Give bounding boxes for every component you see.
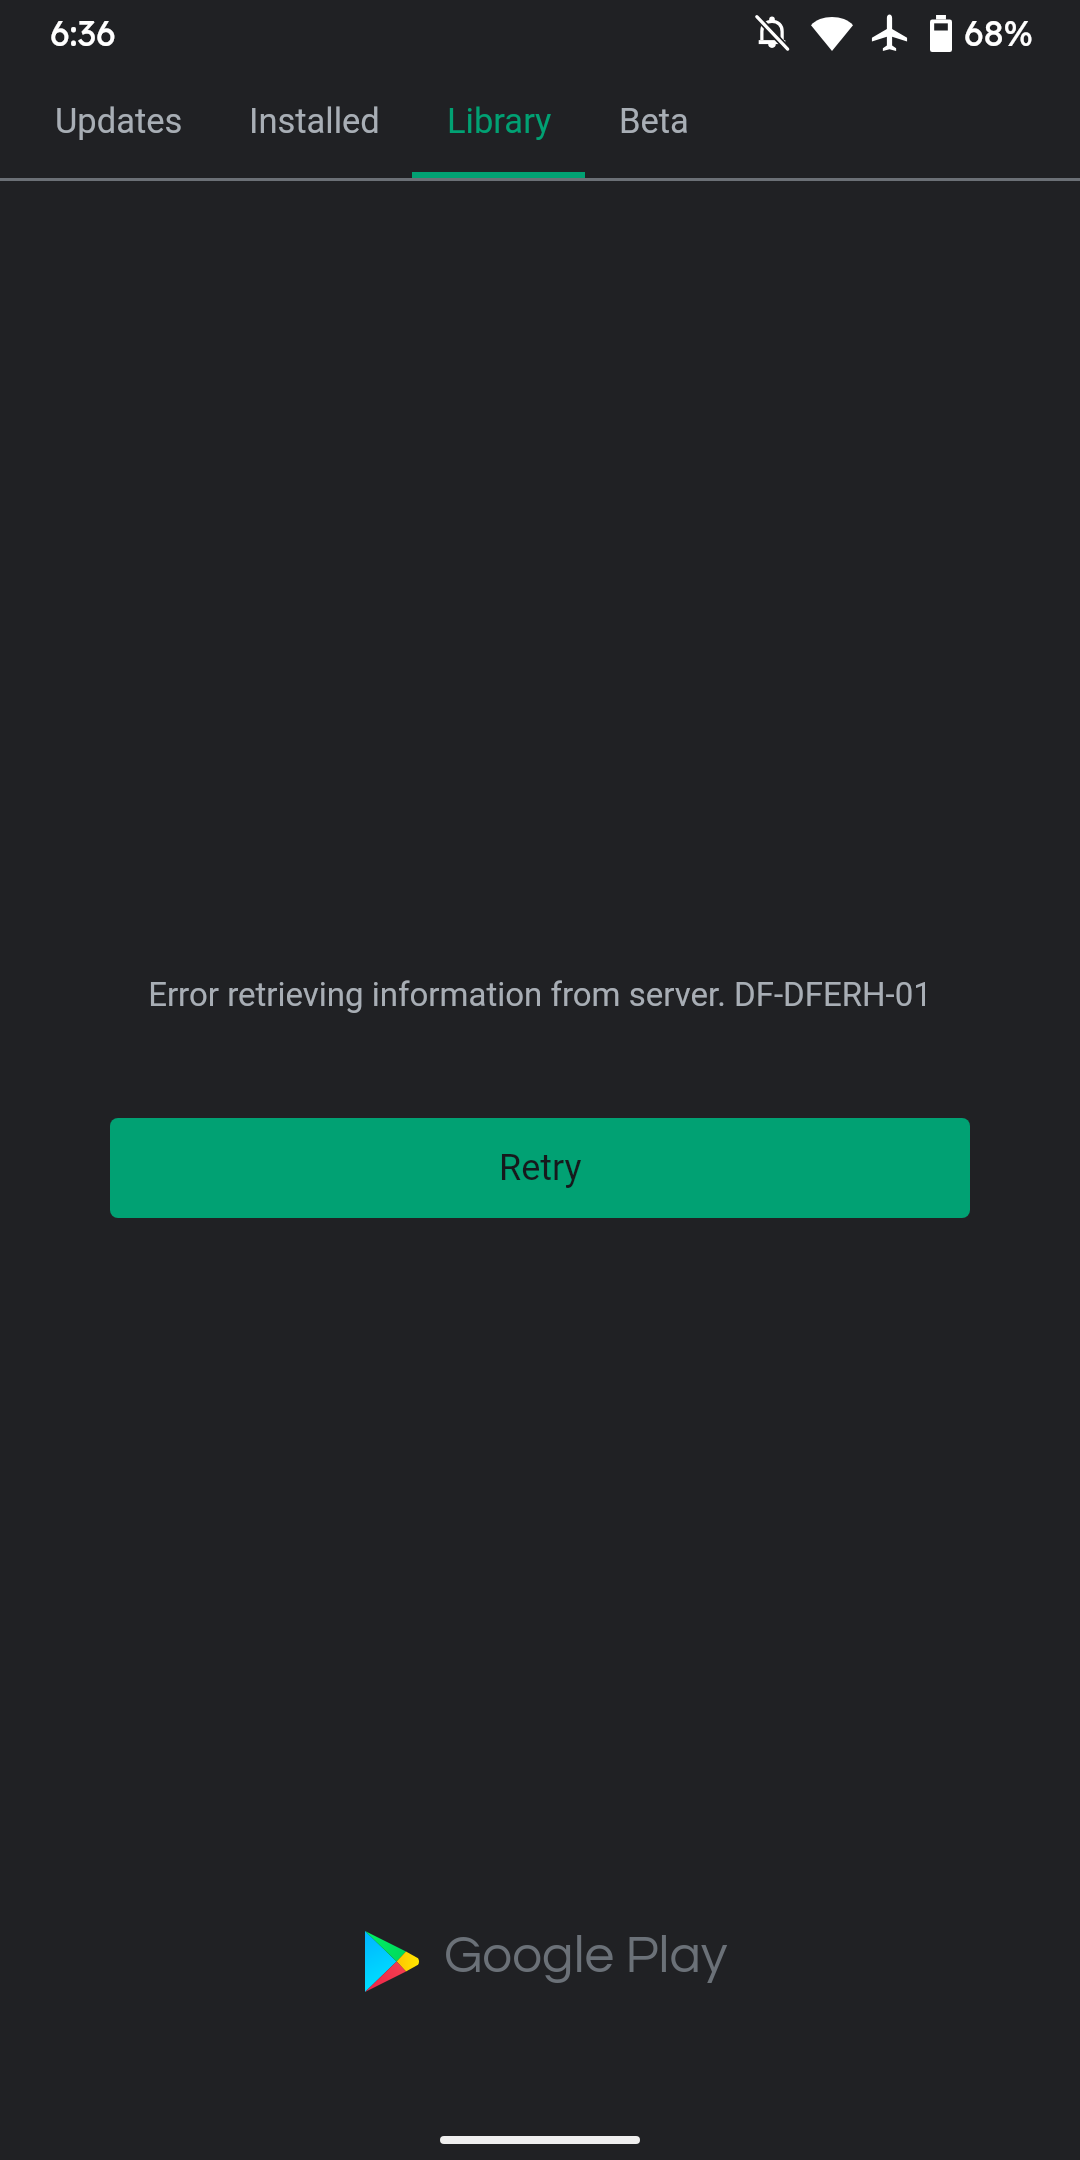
staticText: Installed xyxy=(249,101,380,141)
other: Notifications off xyxy=(753,14,791,52)
button[interactable]: Library xyxy=(425,66,574,178)
staticText: 6:36 xyxy=(50,11,116,55)
other: Airplane mode xyxy=(871,14,908,52)
staticText: Retry xyxy=(499,1147,582,1189)
staticText: 68% xyxy=(964,11,1034,55)
other: Wi-Fi xyxy=(811,15,853,51)
staticText: Updates xyxy=(55,101,183,141)
button[interactable]: Beta xyxy=(598,66,709,178)
button[interactable]: Retry xyxy=(110,1118,970,1218)
button[interactable]: Installed xyxy=(229,66,400,178)
other: Battery 68 percent xyxy=(930,15,952,52)
staticText: Google Play xyxy=(444,1929,728,1984)
staticText: Beta xyxy=(619,101,689,141)
button[interactable]: Updates xyxy=(34,66,203,178)
staticText: Library xyxy=(447,101,552,141)
staticText: Error retrieving information from server… xyxy=(0,975,1080,1014)
